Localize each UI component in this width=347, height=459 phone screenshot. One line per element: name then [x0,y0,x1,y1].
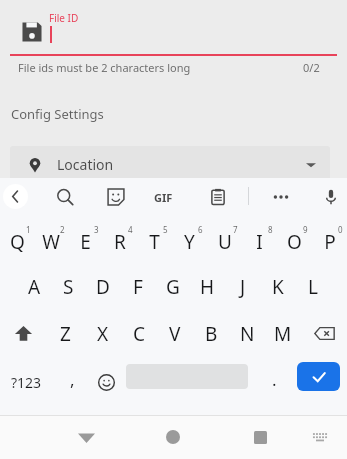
staticText: S [63,274,74,300]
button[interactable]: Back [50,415,122,459]
staticText: I [256,229,263,255]
staticText: G [166,274,180,300]
button[interactable]: Z [47,310,84,357]
staticText: 6 [198,224,203,235]
staticText: , [70,368,75,391]
staticText: 9 [303,224,308,235]
button[interactable]: I [242,216,277,263]
staticText: E [80,229,91,255]
staticText: 4 [128,224,133,235]
button[interactable]: R [102,216,137,263]
button[interactable]: Q [0,216,34,263]
staticText: N [240,321,255,347]
button[interactable]: Voice input [318,184,344,210]
button[interactable]: Home [137,415,209,459]
button[interactable]: U [207,216,242,263]
button[interactable]: More options [268,184,294,210]
button[interactable]: J [225,263,260,310]
button[interactable]: Stickers [103,184,129,210]
button[interactable]: Recent apps [224,415,296,459]
staticText: X [97,321,109,347]
staticText: A [28,274,41,300]
staticText: U [218,229,232,255]
button[interactable]: O [277,216,312,263]
staticText: H [200,274,215,300]
staticText: . [272,368,277,391]
button[interactable]: Y [172,216,207,263]
button[interactable]: Clipboard [205,184,231,210]
button[interactable]: Enter [297,362,340,391]
staticText: 0 [338,224,343,235]
button[interactable]: A [17,263,51,310]
staticText: File ids must be 2 characters long [18,60,191,75]
button[interactable]: Comma [52,357,92,407]
button[interactable]: S [51,263,85,310]
button[interactable]: X [84,310,121,357]
button[interactable]: G [155,263,190,310]
staticText: Z [60,321,71,347]
staticText: C [133,321,146,347]
staticText: 3 [94,224,99,235]
staticText: 8 [268,224,273,235]
button[interactable]: N [229,310,265,357]
staticText: GIF [154,190,173,205]
button[interactable]: Period [256,357,292,407]
staticText: 0/2 [303,60,320,75]
button[interactable]: Search [52,184,78,210]
button[interactable]: W [34,216,68,263]
button[interactable]: GIF [150,184,176,210]
staticText: Y [184,229,195,255]
staticText: 1 [26,224,31,235]
staticText: 2 [60,224,65,235]
button[interactable]: V [157,310,193,357]
button[interactable]: F [120,263,155,310]
staticText: D [96,274,110,300]
button[interactable]: Backspace [301,310,347,357]
button[interactable]: E [68,216,102,263]
button[interactable]: L [295,263,330,310]
staticText: 7 [233,224,238,235]
button[interactable]: Emoji [87,357,125,407]
button[interactable]: D [85,263,120,310]
button[interactable]: Save [18,18,46,46]
staticText: V [169,321,181,347]
staticText: Config Settings [11,105,104,123]
staticText: J [240,274,246,300]
staticText: Q [10,229,25,255]
staticText: T [149,229,160,255]
button[interactable]: P [312,216,347,263]
staticText: File ID [49,11,79,25]
button[interactable]: Location [10,146,330,183]
button[interactable]: Back [3,184,28,209]
button[interactable]: H [190,263,225,310]
staticText: W [42,229,60,255]
staticText: P [324,229,336,255]
button[interactable]: Switch keyboard [300,415,340,459]
staticText: L [308,274,318,300]
button[interactable]: Shift [0,310,47,357]
staticText: K [272,274,284,300]
button[interactable]: T [137,216,172,263]
button[interactable]: ?123 [2,357,50,407]
button[interactable]: K [260,263,295,310]
staticText: O [287,229,302,255]
button[interactable]: B [193,310,229,357]
staticText: F [133,274,143,300]
staticText: ?123 [11,373,42,392]
staticText: B [205,321,218,347]
staticText: 5 [163,224,168,235]
staticText: Location [57,155,114,174]
button[interactable]: C [121,310,157,357]
staticText: R [114,229,126,255]
staticText: M [274,321,292,347]
button[interactable]: M [265,310,301,357]
